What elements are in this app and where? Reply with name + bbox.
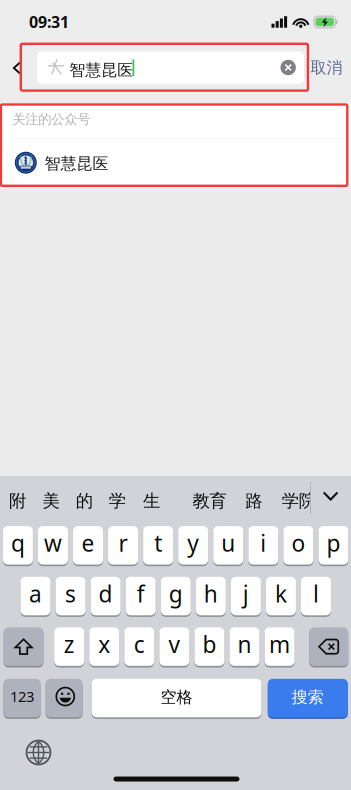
button[interactable]: l	[301, 576, 331, 616]
staticText: 附	[9, 490, 26, 512]
staticText: l	[313, 578, 319, 609]
staticText: t	[154, 527, 162, 558]
button[interactable]: h	[196, 576, 226, 616]
button[interactable]: b	[194, 626, 224, 667]
button[interactable]: Delete	[309, 626, 348, 667]
button[interactable]: y	[178, 525, 208, 566]
button[interactable]: 教育	[193, 490, 227, 512]
button[interactable]: 附	[9, 490, 26, 512]
button[interactable]: g	[161, 576, 191, 616]
button[interactable]: c	[124, 626, 154, 667]
staticText: 智慧昆医	[45, 153, 109, 174]
staticText: i	[260, 527, 266, 558]
staticText: p	[326, 527, 340, 558]
button[interactable]: u	[213, 525, 243, 566]
button[interactable]: 搜索	[268, 678, 348, 718]
button[interactable]: Numbers and symbols	[3, 678, 41, 718]
staticText: a	[29, 578, 42, 609]
button[interactable]: Back	[4, 48, 30, 88]
staticText: c	[134, 629, 145, 660]
staticText: d	[99, 578, 113, 609]
staticText: 学院	[282, 490, 316, 512]
staticText: b	[202, 629, 216, 660]
button[interactable]: e	[73, 525, 103, 566]
button[interactable]: n	[229, 626, 259, 667]
button[interactable]: q	[3, 525, 33, 566]
staticText: 的	[76, 490, 93, 512]
staticText: 学	[109, 490, 126, 512]
staticText: 关注的公众号	[12, 111, 90, 128]
staticText: w	[44, 527, 62, 558]
staticText: 智慧昆医	[69, 60, 133, 80]
staticText: x	[98, 629, 110, 660]
staticText: 搜索	[292, 687, 324, 707]
staticText: j	[243, 578, 249, 609]
button[interactable]: Switch keyboard	[22, 736, 54, 768]
staticText: 教育	[193, 490, 227, 512]
staticText: h	[204, 578, 218, 609]
staticText: 美	[42, 490, 59, 512]
button[interactable]: v	[159, 626, 189, 667]
staticText: 空格	[161, 687, 193, 707]
button[interactable]: a	[20, 576, 50, 616]
button[interactable]: i	[248, 525, 278, 566]
button[interactable]: 智慧昆医	[0, 138, 351, 185]
staticText: 生	[143, 490, 160, 512]
button[interactable]: k	[266, 576, 296, 616]
button[interactable]: m	[265, 626, 295, 667]
button[interactable]: p	[318, 525, 348, 566]
button[interactable]: 学	[109, 490, 126, 512]
staticText: f	[137, 578, 145, 609]
button[interactable]: 的	[76, 490, 93, 512]
staticText: v	[168, 629, 180, 660]
staticText: o	[291, 527, 305, 558]
staticText: q	[11, 527, 25, 558]
staticText: 取消	[310, 57, 342, 78]
staticText: 路	[245, 490, 262, 512]
button[interactable]: 智慧昆医	[37, 51, 304, 84]
button[interactable]: 空格	[92, 678, 261, 718]
staticText: r	[119, 527, 128, 558]
button[interactable]: w	[38, 525, 68, 566]
button[interactable]: 取消	[307, 51, 345, 84]
button[interactable]: r	[108, 525, 138, 566]
button[interactable]: s	[56, 576, 86, 616]
staticText: m	[269, 629, 290, 660]
staticText: u	[221, 527, 235, 558]
button[interactable]: 学院	[282, 490, 316, 512]
button[interactable]: 生	[143, 490, 160, 512]
staticText: z	[64, 629, 75, 660]
staticText: y	[187, 527, 199, 558]
button[interactable]: o	[283, 525, 313, 566]
staticText: s	[65, 578, 76, 609]
staticText: g	[169, 578, 183, 609]
staticText: e	[81, 527, 94, 558]
button[interactable]: Emoji	[46, 678, 83, 718]
staticText: 09:31	[29, 11, 69, 33]
staticText: k	[275, 578, 287, 609]
button[interactable]: Shift	[4, 626, 43, 667]
button[interactable]: 美	[42, 490, 59, 512]
staticText: 123	[10, 686, 34, 706]
button[interactable]: t	[143, 525, 173, 566]
button[interactable]: d	[91, 576, 121, 616]
staticText: n	[237, 629, 251, 660]
button[interactable]: x	[89, 626, 119, 667]
button[interactable]: Hide candidates	[316, 481, 346, 511]
button[interactable]: z	[54, 626, 84, 667]
button[interactable]: j	[231, 576, 261, 616]
button[interactable]: f	[126, 576, 156, 616]
button[interactable]: 路	[245, 490, 262, 512]
